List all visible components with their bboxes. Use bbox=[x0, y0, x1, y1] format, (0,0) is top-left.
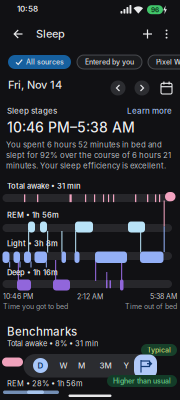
staticText: Typical bbox=[147, 346, 171, 354]
button[interactable]: More options bbox=[0, 0, 180, 400]
button[interactable]: D bbox=[37, 361, 43, 370]
staticText: 10:58 bbox=[17, 4, 38, 14]
staticText: Benchmarks bbox=[7, 324, 77, 338]
staticText: 5:38 AM bbox=[150, 292, 177, 301]
button[interactable]: Previous day bbox=[110, 80, 125, 95]
staticText: 10:46 PM bbox=[3, 292, 33, 301]
staticText: REM • 28% • 1h 56m bbox=[7, 379, 83, 388]
button[interactable]: Next day bbox=[134, 80, 149, 95]
staticText: D bbox=[37, 361, 43, 370]
staticText: Learn more bbox=[127, 106, 172, 116]
button[interactable]: 3M bbox=[99, 361, 111, 370]
button[interactable]: Calendar bbox=[160, 81, 172, 94]
button[interactable]: Benchmarks bbox=[134, 354, 157, 378]
staticText: Pixel Watch bbox=[156, 58, 180, 66]
staticText: M bbox=[78, 361, 85, 370]
staticText: Sleep stages bbox=[7, 106, 57, 116]
staticText: 3M bbox=[99, 361, 111, 370]
staticText: REM • 1h 56m bbox=[7, 210, 59, 220]
staticText: Y bbox=[123, 361, 129, 370]
staticText: 96 bbox=[151, 6, 159, 14]
staticText: minutes. Your sleep efficiency is excell… bbox=[6, 161, 166, 170]
staticText: Higher than usual bbox=[113, 377, 171, 385]
button[interactable]: Add bbox=[0, 0, 180, 400]
staticText: slept for 92% over the course of 6 hours… bbox=[6, 150, 171, 160]
button[interactable]: Back bbox=[0, 0, 180, 400]
button[interactable]: Y bbox=[123, 361, 129, 370]
button[interactable]: Learn more bbox=[127, 106, 172, 116]
staticText: Sleep bbox=[36, 27, 65, 40]
staticText: Total awake • 8% • 31 min bbox=[7, 339, 98, 348]
staticText: 10:46 PM–5:38 AM bbox=[7, 119, 135, 136]
staticText: You spent 6 hours 52 minutes in bed and bbox=[6, 140, 162, 149]
button[interactable]: All sources bbox=[8, 55, 71, 69]
button[interactable]: W bbox=[59, 361, 67, 370]
staticText: Entered by you bbox=[85, 58, 134, 66]
staticText: All sources bbox=[26, 58, 64, 66]
staticText: Light • 3h 8m bbox=[7, 239, 58, 248]
staticText: W bbox=[59, 361, 67, 370]
staticText: Time out of bed bbox=[125, 302, 177, 311]
staticText: Total awake • 31 min bbox=[7, 181, 81, 191]
button[interactable]: M bbox=[78, 361, 85, 370]
staticText: Deep • 1h 16m bbox=[7, 268, 58, 277]
staticText: 2:12 AM bbox=[77, 293, 103, 301]
staticText: Fri, Nov 14 bbox=[8, 78, 62, 91]
button[interactable]: Pixel Watch bbox=[148, 55, 180, 69]
staticText: Time you got to bed bbox=[3, 302, 68, 311]
button[interactable]: Entered by you bbox=[77, 55, 142, 69]
